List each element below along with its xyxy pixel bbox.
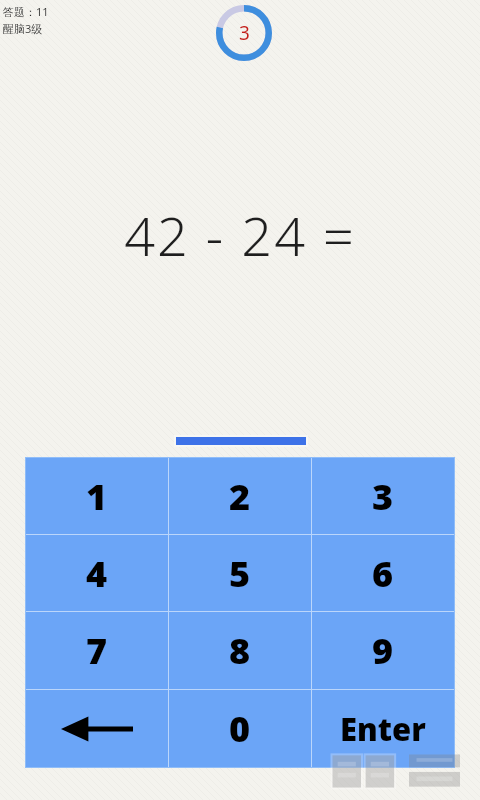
- staticText: 42 - 24 =: [124, 198, 356, 272]
- staticText: 3: [239, 20, 250, 46]
- staticText: 9: [372, 626, 394, 675]
- button[interactable]: 7: [26, 612, 168, 689]
- button[interactable]: Backspace: [26, 690, 168, 767]
- staticText: 醒脑3级: [3, 21, 43, 36]
- staticText: 8: [229, 626, 251, 675]
- staticText: 3: [372, 472, 394, 521]
- button[interactable]: 5: [169, 535, 311, 611]
- other: Countdown timer: [214, 3, 274, 63]
- button[interactable]: 0: [169, 690, 311, 767]
- staticText: Enter: [340, 708, 426, 750]
- staticText: 2: [229, 472, 251, 521]
- staticText: 4: [86, 549, 108, 598]
- staticText: 6: [372, 549, 394, 598]
- staticText: 答题：11: [3, 4, 49, 19]
- staticText: 1: [86, 472, 108, 521]
- staticText: 7: [86, 626, 108, 675]
- staticText: 0: [229, 704, 251, 753]
- button[interactable]: 6: [312, 535, 454, 611]
- button[interactable]: 2: [169, 458, 311, 534]
- button[interactable]: 3: [312, 458, 454, 534]
- button[interactable]: Enter: [312, 690, 454, 767]
- button[interactable]: 8: [169, 612, 311, 689]
- button[interactable]: 4: [26, 535, 168, 611]
- staticText: 5: [229, 549, 251, 598]
- button[interactable]: 1: [26, 458, 168, 534]
- button[interactable]: 9: [312, 612, 454, 689]
